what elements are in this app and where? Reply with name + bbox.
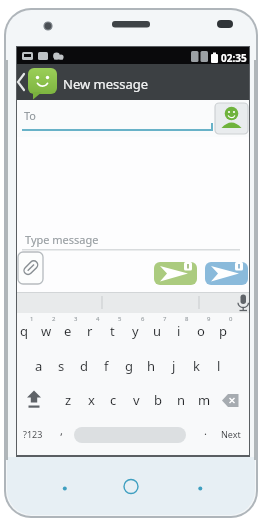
button[interactable] xyxy=(74,427,186,443)
button[interactable]: a xyxy=(28,354,50,378)
button[interactable] xyxy=(236,293,249,313)
button[interactable]: h xyxy=(140,354,162,378)
button[interactable]: d xyxy=(73,354,95,378)
staticText: 9 xyxy=(207,315,211,323)
staticText: i xyxy=(177,322,181,340)
button[interactable]: t xyxy=(101,319,123,343)
staticText: x xyxy=(88,391,95,409)
button[interactable]: x xyxy=(80,388,102,412)
staticText: 7 xyxy=(163,315,167,323)
button[interactable]: r xyxy=(79,319,101,343)
button[interactable]: z xyxy=(57,388,79,412)
button[interactable] xyxy=(120,476,142,498)
staticText: 02:35 xyxy=(221,51,247,65)
staticText: m xyxy=(198,391,211,409)
staticText: 0 xyxy=(229,315,233,323)
staticText: , xyxy=(60,423,63,438)
staticText: b xyxy=(154,391,162,409)
button[interactable]: v xyxy=(125,388,147,412)
staticText: 1 xyxy=(30,315,34,323)
button[interactable]: ?123 xyxy=(22,422,44,446)
staticText: . xyxy=(204,423,207,438)
button[interactable]: . xyxy=(194,418,216,442)
button[interactable] xyxy=(20,228,220,250)
staticText: y xyxy=(132,322,139,340)
staticText: k xyxy=(193,357,200,375)
staticText: c xyxy=(110,391,117,409)
button[interactable]: m xyxy=(193,388,215,412)
button[interactable]: i xyxy=(168,319,190,343)
button[interactable]: k xyxy=(185,354,207,378)
button[interactable]: u xyxy=(146,319,168,343)
staticText: 4 xyxy=(96,315,100,323)
staticText: v xyxy=(133,391,140,409)
button[interactable]: c xyxy=(102,388,124,412)
staticText: Type message xyxy=(25,232,99,247)
button[interactable]: l xyxy=(208,354,230,378)
button[interactable]: , xyxy=(50,418,72,442)
staticText: l xyxy=(217,357,221,375)
staticText: ?123 xyxy=(23,428,43,440)
button[interactable]: g xyxy=(118,354,140,378)
button[interactable]: j xyxy=(163,354,185,378)
button[interactable] xyxy=(215,103,248,134)
button[interactable]: y xyxy=(124,319,146,343)
button[interactable] xyxy=(154,262,197,285)
button[interactable]: o xyxy=(190,319,212,343)
staticText: o xyxy=(197,322,205,340)
button[interactable]: p xyxy=(212,319,234,343)
staticText: n xyxy=(177,391,186,409)
staticText: g xyxy=(125,357,133,375)
staticText: t xyxy=(110,322,115,340)
button[interactable]: Next xyxy=(220,422,242,446)
staticText: 5 xyxy=(118,315,122,323)
staticText: d xyxy=(80,357,88,375)
staticText: 6 xyxy=(141,315,145,323)
staticText: 3 xyxy=(74,315,78,323)
staticText: 2 xyxy=(52,315,56,323)
button[interactable]: w xyxy=(35,319,57,343)
button[interactable]: e xyxy=(57,319,79,343)
staticText: r xyxy=(87,322,93,340)
staticText: To xyxy=(24,108,37,123)
button[interactable] xyxy=(17,100,249,137)
staticText: w xyxy=(41,322,52,340)
button[interactable] xyxy=(205,262,248,285)
staticText: 8 xyxy=(185,315,189,323)
staticText: j xyxy=(172,357,176,375)
staticText: e xyxy=(64,322,72,340)
staticText: p xyxy=(219,322,227,340)
staticText: Next xyxy=(221,428,241,440)
staticText: z xyxy=(65,391,72,409)
button[interactable] xyxy=(14,68,30,96)
staticText: New message xyxy=(63,75,149,93)
button[interactable]: b xyxy=(147,388,169,412)
staticText: u xyxy=(153,322,162,340)
staticText: f xyxy=(104,357,109,375)
button[interactable]: f xyxy=(95,354,117,378)
staticText: h xyxy=(147,357,156,375)
button[interactable] xyxy=(18,252,43,284)
staticText: s xyxy=(58,357,65,375)
button[interactable]: s xyxy=(50,354,72,378)
button[interactable]: n xyxy=(170,388,192,412)
button[interactable]: q xyxy=(13,319,35,343)
staticText: q xyxy=(20,322,28,340)
staticText: a xyxy=(35,357,43,375)
